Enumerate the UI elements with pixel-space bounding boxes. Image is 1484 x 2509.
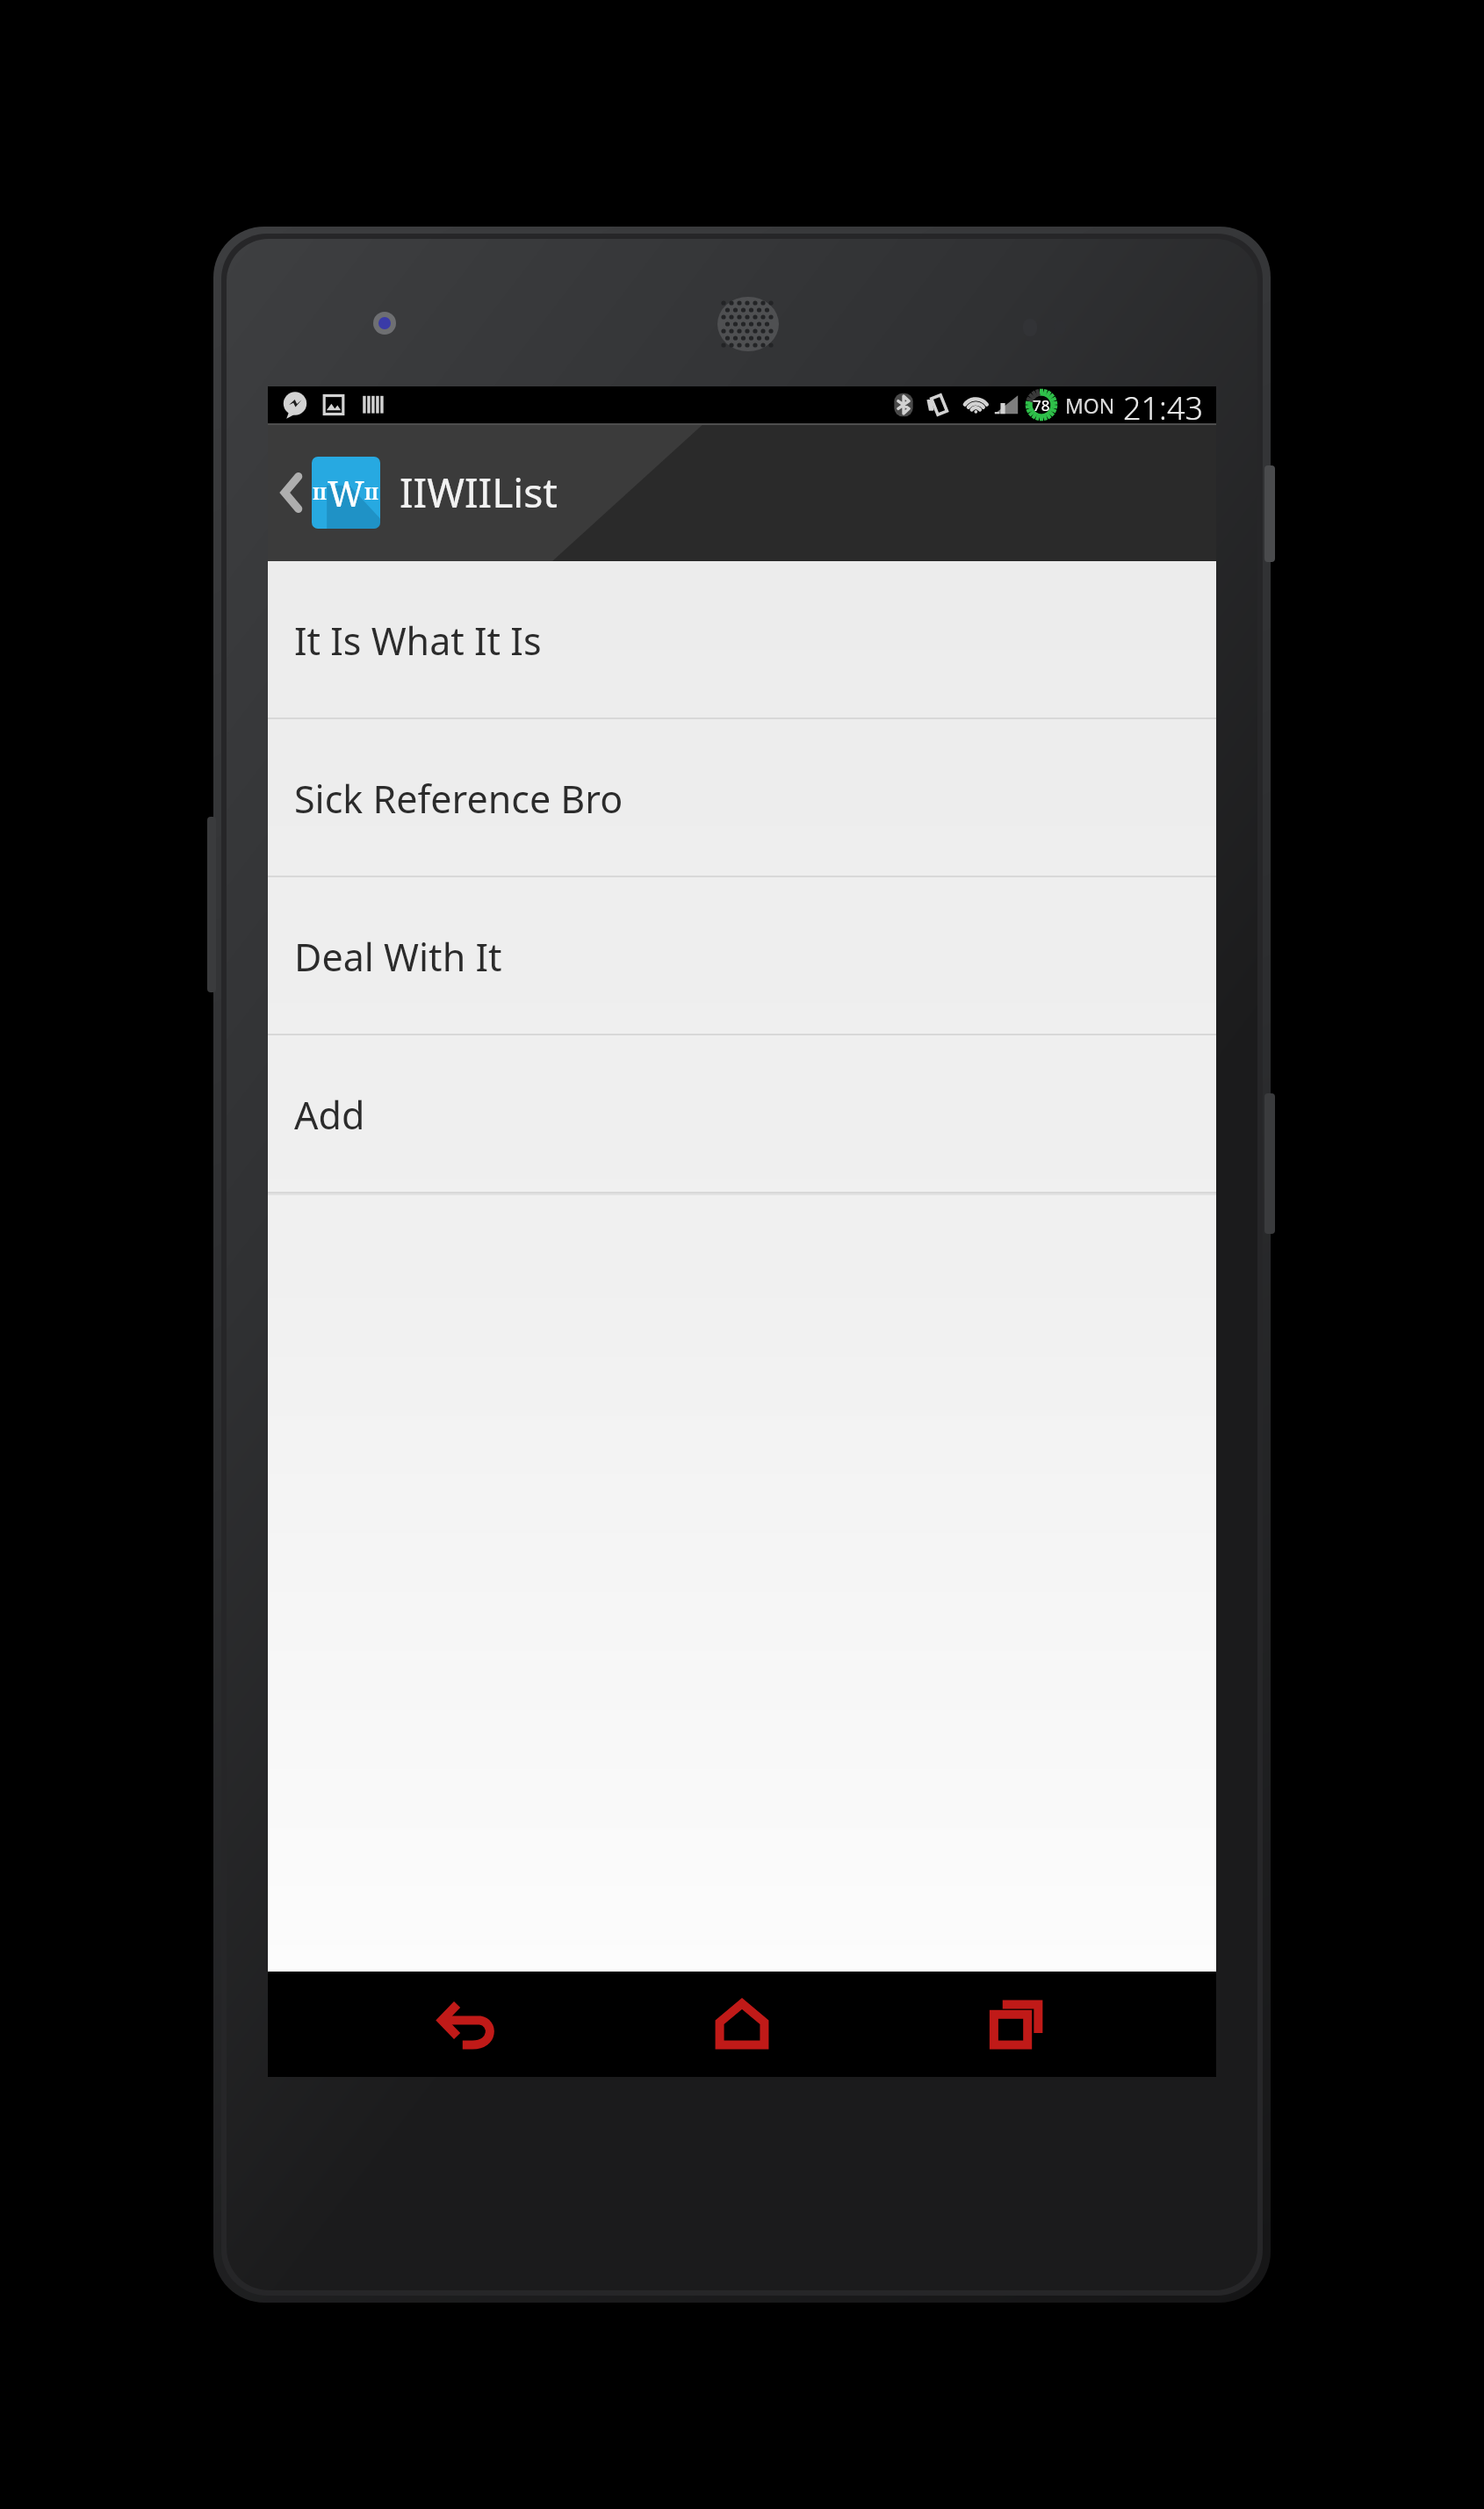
other: Navigate up (280, 473, 303, 512)
button[interactable]: Deal With It (268, 877, 1216, 1035)
button[interactable]: Sick Reference Bro (268, 719, 1216, 877)
button[interactable]: Navigate up (268, 423, 575, 561)
staticText: II (313, 481, 328, 505)
button[interactable]: Recent apps (942, 1972, 1091, 2077)
staticText: 21:43 (1123, 386, 1204, 423)
staticText: It Is What It Is (294, 615, 542, 667)
staticText: Sick Reference Bro (294, 773, 623, 825)
staticText: W (328, 469, 364, 516)
button[interactable]: Add (268, 1035, 1216, 1193)
button[interactable]: Back (393, 1972, 543, 2077)
button[interactable]: It Is What It Is (268, 561, 1216, 719)
button[interactable]: Home (667, 1972, 817, 2077)
staticText: Deal With It (294, 931, 502, 983)
staticText: II (364, 481, 379, 505)
staticText: Add (294, 1089, 365, 1141)
staticText: MON (1065, 392, 1115, 419)
staticText: 78 (1033, 395, 1050, 415)
staticText: IIWIIList (400, 465, 558, 520)
